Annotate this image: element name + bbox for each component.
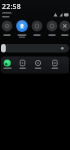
button[interactable]: [27, 20, 40, 33]
button[interactable]: [40, 20, 53, 33]
button[interactable]: [1, 56, 69, 73]
button[interactable]: [14, 20, 27, 33]
staticText: 22:58: [2, 2, 21, 11]
button[interactable]: [53, 20, 66, 33]
button[interactable]: [1, 20, 14, 33]
button[interactable]: [1, 44, 69, 53]
